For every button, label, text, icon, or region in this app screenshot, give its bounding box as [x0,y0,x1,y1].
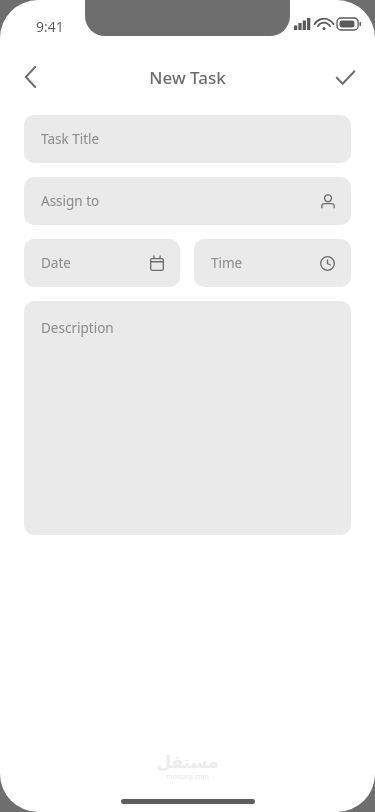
button[interactable]: Back [8,55,52,99]
button[interactable]: Time [194,239,351,287]
staticText: Date [41,254,71,272]
staticText: 9:41 [36,17,64,36]
staticText: Task Title [41,130,100,148]
staticText: Description [41,319,114,337]
button[interactable]: Date [24,239,180,287]
button[interactable]: Save task [323,55,367,99]
staticText: New Task [149,66,226,89]
staticText: مستقل [156,752,219,772]
staticText: Time [211,254,243,272]
staticText: mostaql.com [166,772,209,782]
button[interactable]: Description [24,301,351,535]
staticText: Assign to [41,192,100,210]
button[interactable]: Assign to [24,177,351,225]
button[interactable]: Task Title [24,115,351,163]
